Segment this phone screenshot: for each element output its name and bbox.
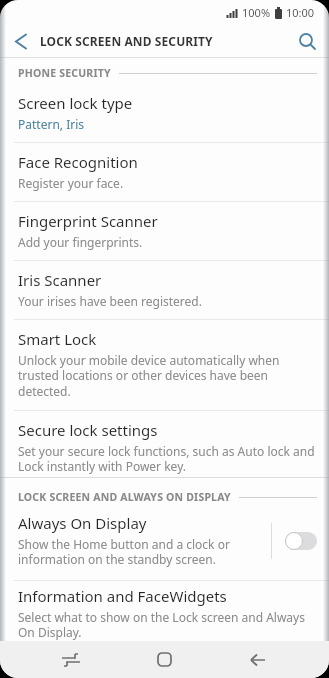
staticText: Show the Home button and a clock or info… <box>18 536 230 568</box>
staticText: Set your secure lock functions, such as … <box>18 443 315 475</box>
staticText: LOCK SCREEN AND ALWAYS ON DISPLAY <box>18 490 231 504</box>
staticText: Iris Scanner <box>18 270 102 290</box>
staticText: Secure lock settings <box>18 420 158 440</box>
button[interactable] <box>211 641 305 678</box>
staticText: LOCK SCREEN AND SECURITY <box>40 33 213 49</box>
staticText: Smart Lock <box>18 329 97 349</box>
staticText: Pattern, Iris <box>18 116 85 132</box>
button[interactable]: Secure lock settings <box>0 411 329 477</box>
staticText: Fingerprint Scanner <box>18 211 158 231</box>
button[interactable]: Iris Scanner <box>0 261 329 319</box>
staticText: Always On Display <box>18 513 147 533</box>
staticText: Register your face. <box>18 175 124 191</box>
staticText: PHONE SECURITY <box>18 66 111 80</box>
staticText: Add your fingerprints. <box>18 234 143 250</box>
button[interactable]: Face Recognition <box>0 143 329 201</box>
staticText: Your irises have been registered. <box>18 293 202 309</box>
button[interactable] <box>0 25 40 57</box>
button[interactable]: Fingerprint Scanner <box>0 202 329 260</box>
staticText: 100% <box>242 5 271 20</box>
button[interactable]: Information and FaceWidgets <box>0 581 329 651</box>
staticText: Information and FaceWidgets <box>18 586 227 606</box>
button[interactable] <box>24 641 117 678</box>
staticText: Select what to show on the Lock screen a… <box>18 609 305 641</box>
button[interactable]: Screen lock type <box>0 84 329 142</box>
button[interactable]: Always On Display <box>0 504 329 580</box>
button[interactable]: Smart Lock <box>0 320 329 410</box>
staticText: Unlock your mobile device automatically … <box>18 352 280 400</box>
staticText: 10:00 <box>286 5 315 20</box>
staticText: Screen lock type <box>18 93 133 113</box>
staticText: Face Recognition <box>18 152 138 172</box>
button[interactable] <box>117 641 211 678</box>
button[interactable] <box>285 25 329 57</box>
